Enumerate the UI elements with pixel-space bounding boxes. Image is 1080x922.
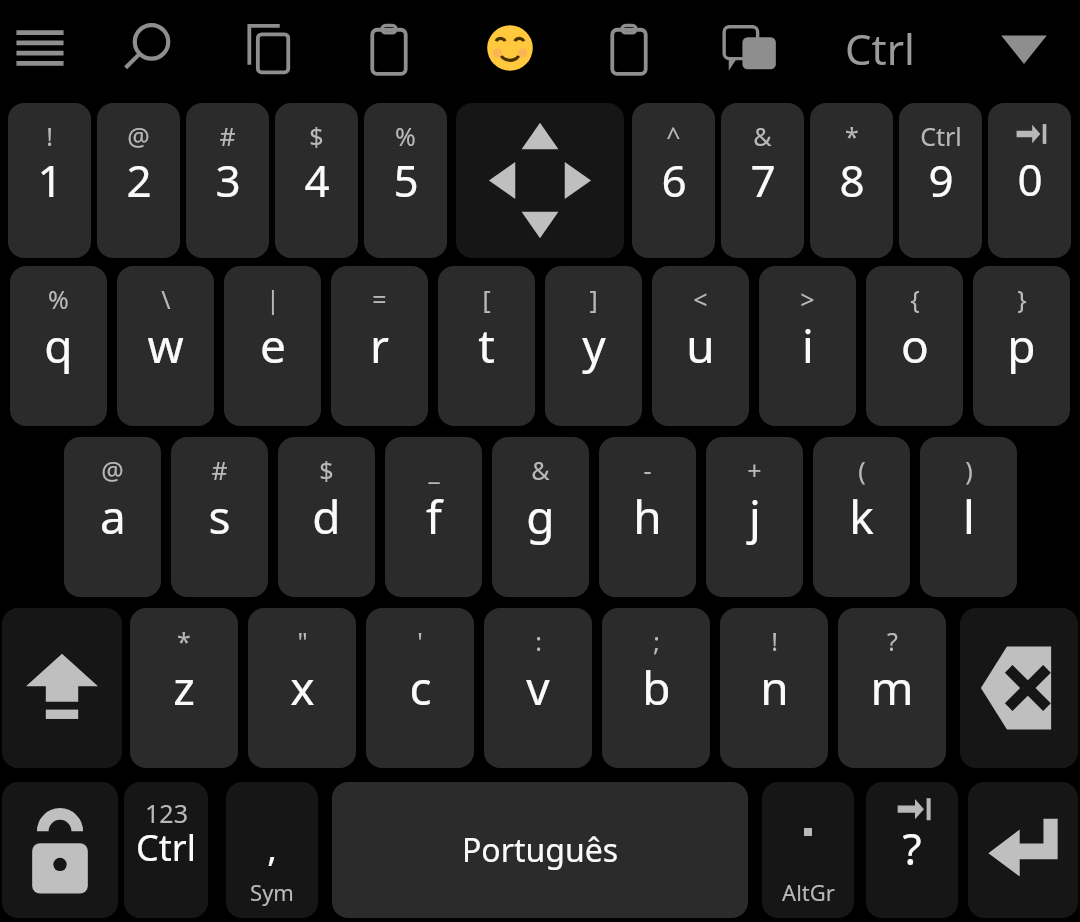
staticText: ?: [902, 818, 922, 878]
staticText: %: [395, 119, 416, 153]
button[interactable]: Lock: [2, 782, 118, 918]
button[interactable]: Menu: [2, 10, 78, 86]
button[interactable]: }: [973, 266, 1070, 426]
staticText: c: [409, 656, 432, 719]
button[interactable]: Backspace: [960, 608, 1078, 768]
staticText: 7: [750, 150, 776, 210]
staticText: 8: [839, 150, 865, 210]
button[interactable]: Português: [332, 782, 748, 918]
staticText: ": [297, 624, 308, 658]
button[interactable]: Search: [112, 10, 188, 86]
staticText: ': [417, 624, 423, 658]
staticText: *: [177, 624, 191, 658]
button[interactable]: 123: [124, 782, 208, 918]
button[interactable]: :: [484, 608, 592, 768]
staticText: <: [693, 282, 708, 316]
staticText: ^: [666, 119, 681, 153]
button[interactable]: %: [364, 103, 447, 258]
staticText: 4: [304, 150, 330, 210]
button[interactable]: Copy: [232, 10, 308, 86]
button[interactable]: Clipboard: [591, 10, 667, 86]
button[interactable]: @: [64, 437, 161, 597]
staticText: _: [428, 453, 440, 487]
button[interactable]: $: [278, 437, 375, 597]
button[interactable]: -: [599, 437, 696, 597]
staticText: |: [266, 282, 280, 316]
button[interactable]: &: [492, 437, 589, 597]
button[interactable]: &: [721, 103, 804, 258]
staticText: g: [526, 485, 555, 548]
staticText: 1: [37, 150, 63, 210]
button[interactable]: [: [438, 266, 535, 426]
button[interactable]: Ctrl: [899, 103, 982, 258]
staticText: 9: [928, 150, 954, 210]
button[interactable]: *: [810, 103, 893, 258]
button[interactable]: ,: [226, 782, 318, 918]
button[interactable]: *: [130, 608, 238, 768]
button[interactable]: Paste: [351, 10, 427, 86]
button[interactable]: Shift: [2, 608, 122, 768]
button[interactable]: ': [366, 608, 474, 768]
staticText: s: [208, 485, 231, 548]
staticText: ]: [589, 282, 598, 316]
staticText: $: [309, 119, 324, 153]
staticText: k: [849, 485, 874, 548]
button[interactable]: @: [97, 103, 180, 258]
button[interactable]: 0: [988, 103, 1071, 258]
button[interactable]: {: [866, 266, 963, 426]
button[interactable]: $: [275, 103, 358, 258]
staticText: =: [372, 282, 387, 316]
button[interactable]: +: [706, 437, 803, 597]
button[interactable]: ^: [632, 103, 715, 258]
button[interactable]: !: [8, 103, 91, 258]
staticText: Ctrl: [920, 119, 962, 153]
staticText: p: [1007, 314, 1036, 377]
staticText: #: [211, 453, 228, 487]
staticText: Sym: [250, 877, 294, 907]
button[interactable]: Ctrl: [820, 12, 940, 84]
button[interactable]: ?: [866, 782, 958, 918]
staticText: (: [858, 453, 866, 487]
button[interactable]: Translate: [712, 10, 788, 86]
button[interactable]: Enter: [968, 782, 1078, 918]
staticText: y: [582, 314, 606, 377]
button[interactable]: =: [331, 266, 428, 426]
staticText: d: [312, 485, 341, 548]
button[interactable]: Arrow keys: [456, 103, 624, 258]
button[interactable]: AltGr: [762, 782, 854, 918]
staticText: u: [686, 314, 715, 377]
button[interactable]: Hide keyboard: [986, 10, 1062, 86]
staticText: [: [482, 282, 491, 316]
staticText: e: [260, 314, 286, 377]
staticText: q: [44, 314, 73, 377]
staticText: o: [901, 314, 929, 377]
staticText: m: [870, 656, 914, 719]
button[interactable]: ": [248, 608, 356, 768]
button[interactable]: ): [920, 437, 1017, 597]
button[interactable]: (: [813, 437, 910, 597]
staticText: 0: [1017, 149, 1043, 209]
button[interactable]: #: [186, 103, 269, 258]
staticText: {: [910, 282, 920, 316]
staticText: -: [643, 453, 652, 487]
staticText: b: [642, 656, 671, 719]
staticText: r: [370, 314, 389, 377]
button[interactable]: %: [10, 266, 107, 426]
staticText: Português: [462, 828, 619, 872]
button[interactable]: ]: [545, 266, 642, 426]
staticText: !: [46, 119, 53, 153]
button[interactable]: <: [652, 266, 749, 426]
button[interactable]: !: [720, 608, 828, 768]
button[interactable]: >: [759, 266, 856, 426]
staticText: Ctrl: [845, 20, 915, 77]
button[interactable]: \: [117, 266, 214, 426]
staticText: +: [747, 453, 762, 487]
staticText: #: [219, 119, 236, 153]
staticText: 2: [126, 150, 152, 210]
button[interactable]: Emoji: [472, 10, 548, 86]
button[interactable]: _: [385, 437, 482, 597]
button[interactable]: #: [171, 437, 268, 597]
button[interactable]: ?: [838, 608, 946, 768]
button[interactable]: ;: [602, 608, 710, 768]
button[interactable]: |: [224, 266, 321, 426]
